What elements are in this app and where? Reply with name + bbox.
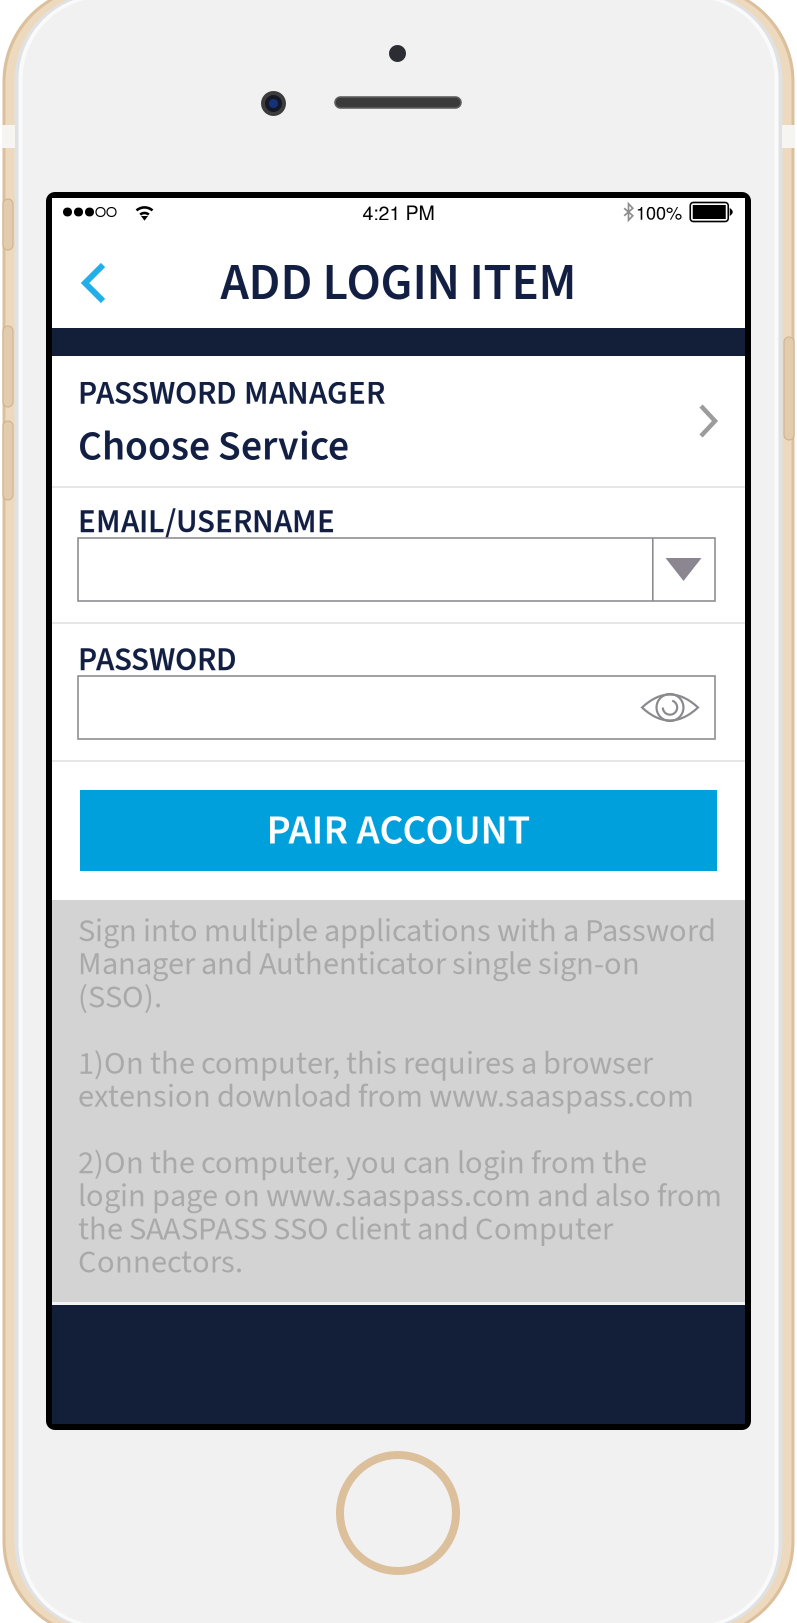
- staticText: Choose Service: [78, 417, 349, 476]
- staticText: 4:21 PM: [362, 198, 434, 226]
- staticText: 100%: [636, 199, 682, 225]
- button[interactable]: Choose username: [652, 538, 715, 601]
- button[interactable]: PASSWORD MANAGER: [52, 356, 745, 486]
- staticText: EMAIL/USERNAME: [78, 499, 335, 545]
- staticText: Sign into multiple applications with a P…: [78, 908, 722, 1285]
- staticText: PASSWORD: [78, 637, 237, 683]
- button[interactable]: PAIR ACCOUNT: [80, 790, 717, 871]
- staticText: PASSWORD MANAGER: [78, 370, 385, 417]
- button[interactable]: Home: [336, 1451, 460, 1575]
- button[interactable]: Show password: [625, 676, 715, 739]
- button[interactable]: Back: [52, 238, 136, 328]
- staticText: ADD LOGIN ITEM: [220, 247, 576, 319]
- staticText: PAIR ACCOUNT: [266, 801, 530, 860]
